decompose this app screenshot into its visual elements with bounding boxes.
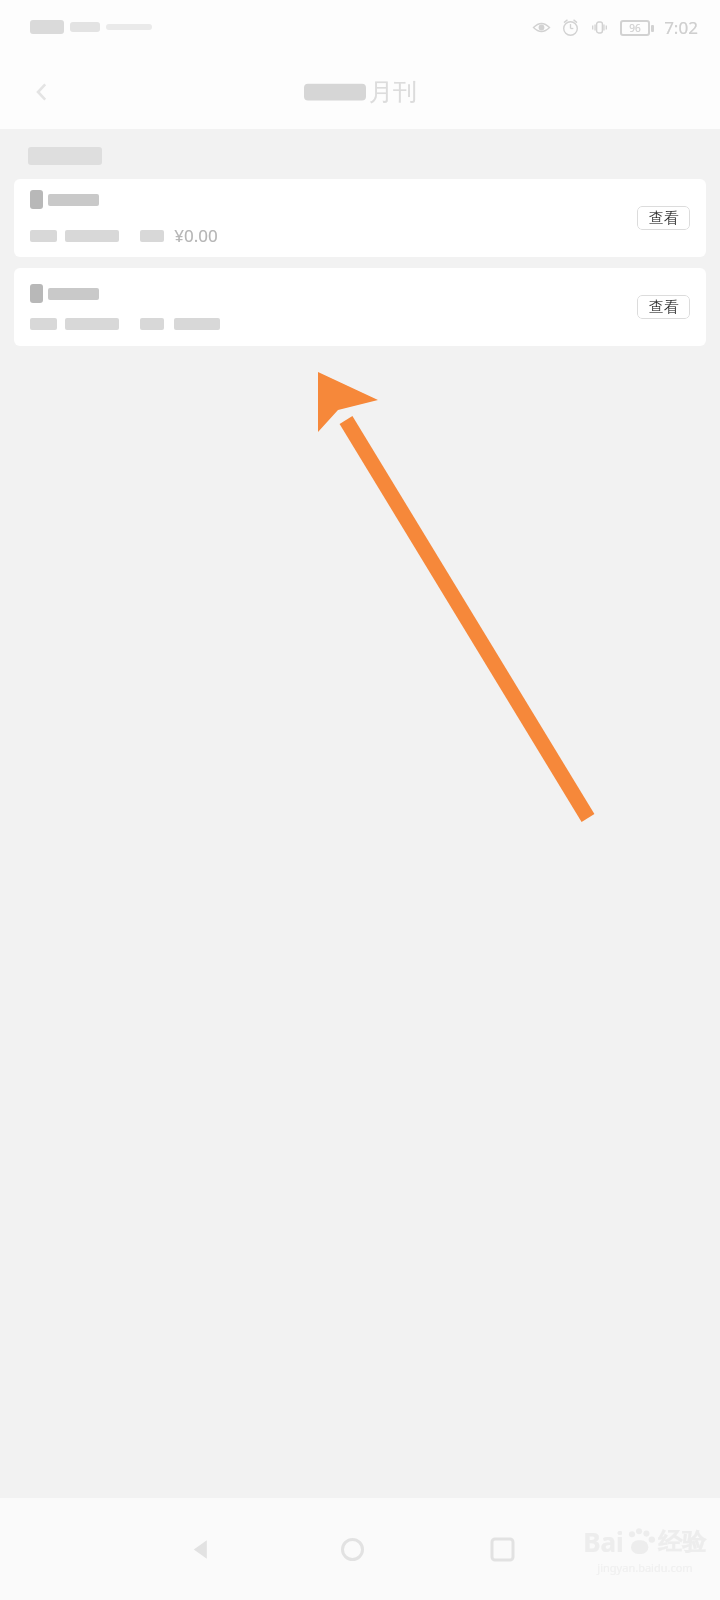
- button[interactable]: Recents: [468, 1515, 536, 1583]
- button[interactable]: 查看: [14, 268, 706, 346]
- button[interactable]: Home: [318, 1515, 386, 1583]
- staticText: 查看: [649, 209, 679, 228]
- staticText: 96: [629, 21, 641, 35]
- staticText: 7:02: [664, 16, 698, 39]
- staticText: Bai: [583, 1524, 624, 1559]
- staticText: 月刊: [369, 77, 417, 107]
- button[interactable]: ¥0.00: [14, 179, 706, 257]
- button[interactable]: Back: [14, 64, 70, 120]
- button[interactable]: 查看: [637, 295, 690, 319]
- button[interactable]: 查看: [637, 206, 690, 230]
- staticText: ¥0.00: [174, 224, 218, 247]
- button[interactable]: Back: [166, 1515, 234, 1583]
- staticText: 经验: [658, 1527, 706, 1557]
- staticText: jingyan.baidu.com: [597, 1560, 693, 1575]
- staticText: 查看: [649, 298, 679, 317]
